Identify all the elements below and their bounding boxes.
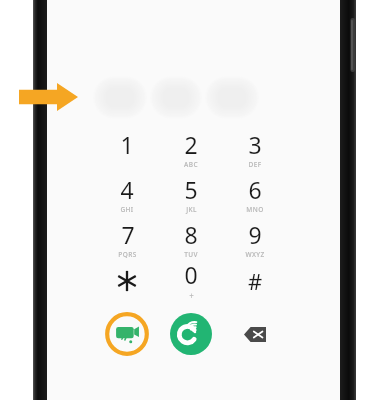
staticText: ABC (184, 160, 198, 169)
button[interactable]: 8 (163, 219, 219, 259)
staticText: 1 (120, 129, 134, 160)
button[interactable]: 3 (227, 129, 283, 169)
button[interactable]: Backspace (233, 320, 277, 348)
staticText: 8 (184, 219, 198, 250)
button[interactable]: 0 (164, 259, 218, 305)
button[interactable]: 1 (99, 129, 155, 169)
button[interactable]: Video call (105, 312, 149, 356)
button[interactable]: 4 (99, 174, 155, 214)
staticText: + (189, 290, 194, 301)
staticText: WXYZ (245, 250, 265, 259)
button[interactable]: 6 (227, 174, 283, 214)
staticText: TUV (184, 250, 198, 259)
button[interactable]: 5 (163, 174, 219, 214)
staticText: PQRS (118, 250, 137, 259)
staticText: # (248, 266, 263, 296)
staticText: 6 (248, 174, 262, 205)
button[interactable] (100, 261, 154, 301)
staticText: 0 (184, 259, 198, 290)
staticText: MNO (246, 205, 264, 214)
staticText: 9 (248, 219, 262, 250)
button[interactable]: # (228, 261, 282, 301)
staticText: 7 (121, 219, 135, 250)
button[interactable]: Call (170, 313, 212, 355)
staticText: DEF (248, 160, 262, 169)
staticText: 4 (120, 174, 134, 205)
staticText: JKL (186, 205, 197, 214)
staticText: 2 (184, 129, 198, 160)
staticText: 5 (184, 174, 198, 205)
button[interactable]: 9 (227, 219, 283, 259)
button[interactable]: 7 (99, 219, 155, 259)
staticText: 3 (248, 129, 262, 160)
button[interactable]: 2 (163, 129, 219, 169)
staticText: GHI (120, 205, 134, 214)
